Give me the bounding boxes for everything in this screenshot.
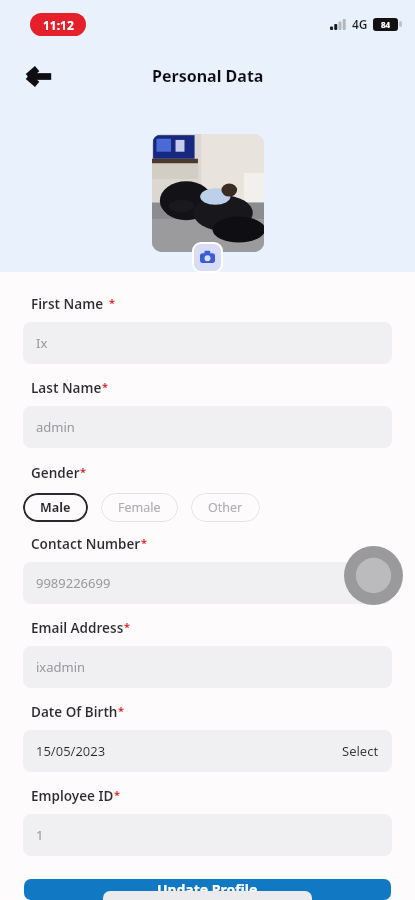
button[interactable]: Update Profile [24, 879, 391, 900]
staticText: 1 [36, 826, 44, 844]
staticText: First Name [31, 295, 104, 313]
staticText: Update Profile [157, 880, 258, 899]
button[interactable]: ixadmin [23, 646, 392, 688]
staticText: * [124, 619, 130, 634]
button[interactable]: Back [15, 53, 61, 99]
staticText: * [102, 379, 108, 394]
button[interactable]: 15/05/2023 [23, 730, 392, 772]
other: Assistive touch [344, 546, 403, 605]
button[interactable]: 9989226699 [23, 562, 392, 604]
staticText: Employee ID [31, 787, 114, 805]
staticText: Last Name [31, 379, 102, 397]
staticText: Email Address [31, 619, 124, 637]
staticText: * [109, 295, 115, 310]
staticText: * [80, 464, 86, 479]
button[interactable]: admin [23, 406, 392, 448]
staticText: ixadmin [36, 658, 86, 676]
staticText: Ix [36, 334, 48, 352]
button[interactable]: Profile photo [152, 134, 264, 252]
button[interactable]: Ix [23, 322, 392, 364]
button[interactable]: Male [23, 493, 88, 522]
staticText: 9989226699 [36, 574, 111, 592]
staticText: * [114, 787, 120, 802]
staticText: Other [208, 499, 243, 516]
staticText: Date Of Birth [31, 703, 118, 721]
button[interactable]: Other [191, 493, 260, 522]
button[interactable]: Female [101, 493, 178, 522]
button[interactable]: Change profile photo [194, 244, 221, 271]
staticText: * [118, 703, 124, 718]
staticText: Contact Number [31, 535, 141, 553]
staticText: Male [40, 499, 71, 516]
staticText: Personal Data [152, 65, 264, 87]
staticText: 15/05/2023 [36, 742, 106, 760]
staticText: Gender [31, 464, 80, 482]
staticText: Female [118, 499, 161, 516]
staticText: admin [36, 418, 75, 436]
staticText: 84 [381, 19, 391, 30]
staticText: * [141, 535, 147, 550]
staticText: 4G [352, 16, 368, 32]
staticText: 11:12 [43, 17, 74, 33]
staticText: Select [342, 742, 379, 760]
